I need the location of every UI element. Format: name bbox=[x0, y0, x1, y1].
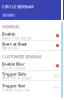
staticText: Blur the sidebar bbox=[2, 67, 25, 70]
staticText: Trigger Size bbox=[2, 83, 25, 88]
staticText: Start at login bbox=[2, 46, 19, 50]
button[interactable]: Enable Blur bbox=[0, 61, 64, 70]
staticText: CUSTOMIZE SIDEBAR bbox=[2, 54, 42, 59]
staticText: Start at Boot bbox=[2, 41, 27, 46]
staticText: Change trigger size bbox=[2, 88, 30, 92]
staticText: Left bbox=[54, 74, 59, 77]
button[interactable]: Enable bbox=[0, 31, 64, 40]
button[interactable]: SETTINGS bbox=[2, 13, 15, 17]
staticText: SETTINGS bbox=[3, 13, 14, 17]
staticText: Enable Circle Sidebar bbox=[2, 37, 31, 40]
staticText: Enable bbox=[2, 31, 15, 37]
staticText: Thin bbox=[53, 86, 59, 89]
staticText: Enable Blur bbox=[2, 61, 25, 67]
staticText: GENERAL bbox=[2, 24, 20, 29]
button[interactable]: Trigger Side bbox=[0, 71, 64, 80]
button[interactable]: Start at Boot bbox=[0, 41, 64, 50]
button[interactable]: Trigger Size bbox=[0, 83, 64, 92]
staticText: CIRCLE SIDEBAR bbox=[2, 4, 34, 9]
staticText: Which side to trigger bbox=[2, 76, 32, 80]
staticText: Trigger Side bbox=[2, 71, 26, 76]
